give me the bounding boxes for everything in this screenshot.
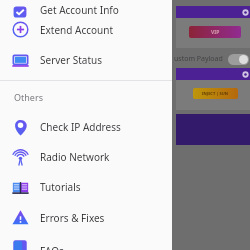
staticText: Tutorials [40,180,81,194]
button[interactable]: Errors & Fixes [0,202,172,233]
staticText: Extend Account [40,23,114,37]
staticText: Server Status [40,53,102,67]
button[interactable]: Tutorials [0,172,172,202]
staticText: INJECT | SUN [202,91,229,96]
button[interactable]: Check IP Address [0,112,172,142]
button[interactable]: Extend Account [0,14,172,45]
staticText: Others [14,91,43,103]
staticText: Radio Network [40,150,110,164]
staticText: Errors & Fixes [40,211,105,225]
staticText: FAQs [40,244,64,250]
button[interactable]: Get Account Info [0,0,172,14]
button[interactable]: Custom Payload toggle [228,54,249,65]
button[interactable]: Radio Network [0,142,172,172]
button[interactable]: Server Status [0,45,172,75]
other: Settings [242,71,249,78]
button[interactable]: FAQs [0,233,172,250]
staticText: VIP [211,29,220,36]
other: Settings [242,9,249,16]
staticText: ustom Payload [174,54,223,64]
staticText: Get Account Info [40,3,119,17]
button[interactable]: Settings [176,6,250,48]
button[interactable]: Settings [176,68,250,110]
staticText: Check IP Address [40,120,121,134]
